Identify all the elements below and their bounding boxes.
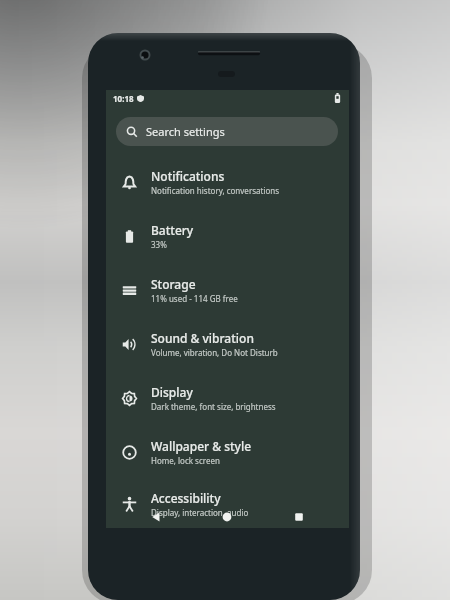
button[interactable]: Display — [106, 371, 349, 425]
staticText: Dark theme, font size, brightness — [151, 401, 276, 412]
staticText: Display — [151, 384, 193, 400]
button[interactable]: Recent apps — [289, 507, 309, 527]
button[interactable]: Storage — [106, 263, 349, 317]
staticText: Display, interaction, audio — [151, 507, 249, 518]
staticText: Storage — [151, 276, 196, 292]
staticText: Battery — [151, 222, 194, 238]
button[interactable]: Accessibility — [106, 479, 349, 528]
staticText: 33% — [151, 239, 167, 250]
button[interactable]: Notifications — [106, 155, 349, 209]
staticText: Search settings — [146, 124, 225, 139]
staticText: Notifications — [151, 168, 225, 184]
staticText: Accessibility — [151, 490, 221, 506]
staticText: Notification history, conversations — [151, 185, 280, 196]
staticText: Volume, vibration, Do Not Disturb — [151, 347, 278, 358]
staticText: 11% used - 114 GB free — [151, 293, 238, 304]
staticText: Wallpaper & style — [151, 438, 252, 454]
button[interactable]: Sound & vibration — [106, 317, 349, 371]
button[interactable]: Search settings — [116, 117, 338, 146]
button[interactable]: Wallpaper & style — [106, 425, 349, 479]
button[interactable]: Back — [146, 507, 166, 527]
button[interactable]: Battery — [106, 209, 349, 263]
staticText: 10:18 — [113, 93, 134, 104]
staticText: Home, lock screen — [151, 455, 220, 466]
staticText: Sound & vibration — [151, 330, 254, 346]
button[interactable]: Home — [217, 507, 237, 527]
